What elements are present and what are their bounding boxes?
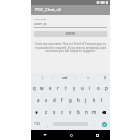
- button[interactable]: w: [38, 82, 46, 94]
- staticText: I: [42, 76, 43, 80]
- staticText: o: [97, 85, 100, 91]
- button[interactable]: h: [74, 94, 82, 106]
- staticText: r: [57, 85, 59, 91]
- button[interactable]: n: [82, 106, 90, 118]
- button[interactable]: Enter: [102, 122, 107, 127]
- button[interactable]: t: [62, 82, 70, 94]
- staticText: v: [69, 109, 72, 115]
- staticText: .: [93, 122, 94, 127]
- button[interactable]: x: [50, 106, 58, 118]
- button[interactable]: u: [78, 82, 86, 94]
- staticText: m: [92, 109, 97, 115]
- button[interactable]: l: [98, 94, 106, 106]
- button[interactable]: v: [66, 106, 74, 118]
- button[interactable]: o: [94, 82, 102, 94]
- button[interactable]: c: [58, 106, 66, 118]
- staticText: g: [69, 97, 72, 103]
- button[interactable]: k: [90, 94, 98, 106]
- button[interactable]: Back: [31, 130, 58, 140]
- button[interactable]: Backspace: [98, 106, 110, 118]
- button[interactable]: Home: [58, 130, 84, 140]
- staticText: t: [65, 85, 67, 91]
- button[interactable]: i: [86, 82, 94, 94]
- staticText: k: [93, 97, 96, 103]
- staticText: POC_Chat_v2: [35, 7, 62, 13]
- button[interactable]: j: [82, 94, 90, 106]
- staticText: q: [33, 85, 36, 91]
- button[interactable]: Recents: [84, 130, 110, 140]
- button[interactable]: I: [31, 73, 53, 82]
- button[interactable]: a: [35, 94, 42, 106]
- staticText: w: [40, 85, 44, 91]
- button[interactable]: Shift: [31, 106, 42, 118]
- button[interactable]: y: [70, 82, 78, 94]
- staticText: h: [77, 97, 80, 103]
- staticText: l: [101, 97, 103, 103]
- button[interactable]: More options: [99, 73, 110, 82]
- button[interactable]: ?123: [31, 118, 43, 130]
- button[interactable]: d: [50, 94, 58, 106]
- button[interactable]: r: [54, 82, 62, 94]
- button[interactable]: z: [42, 106, 50, 118]
- staticText: ?123: [34, 122, 41, 126]
- staticText: b: [77, 109, 80, 115]
- staticText: y: [73, 85, 76, 91]
- button[interactable]: q: [31, 82, 38, 94]
- staticText: j: [85, 97, 87, 103]
- staticText: c: [61, 109, 64, 115]
- staticText: ENTER: [66, 32, 75, 36]
- staticText: s: [45, 97, 48, 103]
- button[interactable]: m: [90, 106, 98, 118]
- staticText: z: [45, 109, 48, 115]
- staticText: p: [105, 85, 108, 91]
- button[interactable]: it: [76, 73, 99, 82]
- staticText: u: [81, 85, 84, 91]
- staticText: it: [87, 76, 89, 80]
- button[interactable]: and: [53, 73, 76, 82]
- staticText: e: [49, 85, 52, 91]
- staticText: x: [53, 109, 56, 115]
- staticText: i: [89, 85, 91, 91]
- staticText: f: [61, 97, 63, 103]
- staticText: d: [53, 97, 56, 103]
- button[interactable]: p: [102, 82, 110, 94]
- button[interactable]: s: [42, 94, 50, 106]
- staticText: n: [85, 109, 88, 115]
- staticText: ,: [47, 122, 48, 127]
- button[interactable]: ,: [43, 118, 52, 130]
- button[interactable]: ENTER: [34, 31, 107, 37]
- button[interactable]: f: [58, 94, 66, 106]
- staticText: a: [37, 97, 40, 103]
- staticText: and: [62, 76, 68, 80]
- button[interactable]: g: [66, 94, 74, 106]
- button[interactable]: e: [46, 82, 54, 94]
- staticText: Enter any username. This is a Proof of C…: [34, 42, 107, 52]
- staticText: User name: [34, 18, 46, 21]
- button[interactable]: b: [74, 106, 82, 118]
- staticText: user_a: [34, 21, 47, 26]
